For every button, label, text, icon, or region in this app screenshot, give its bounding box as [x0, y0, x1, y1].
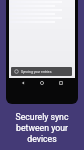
staticText: Syncing your entries — [21, 70, 52, 74]
button[interactable] — [9, 19, 75, 23]
button[interactable]: Recent apps — [59, 81, 63, 85]
button[interactable]: Home — [40, 81, 44, 85]
staticText: Securely sync between your devices — [0, 112, 84, 144]
button[interactable]: Back — [21, 81, 25, 85]
button[interactable]: Syncing your entries — [11, 67, 72, 76]
